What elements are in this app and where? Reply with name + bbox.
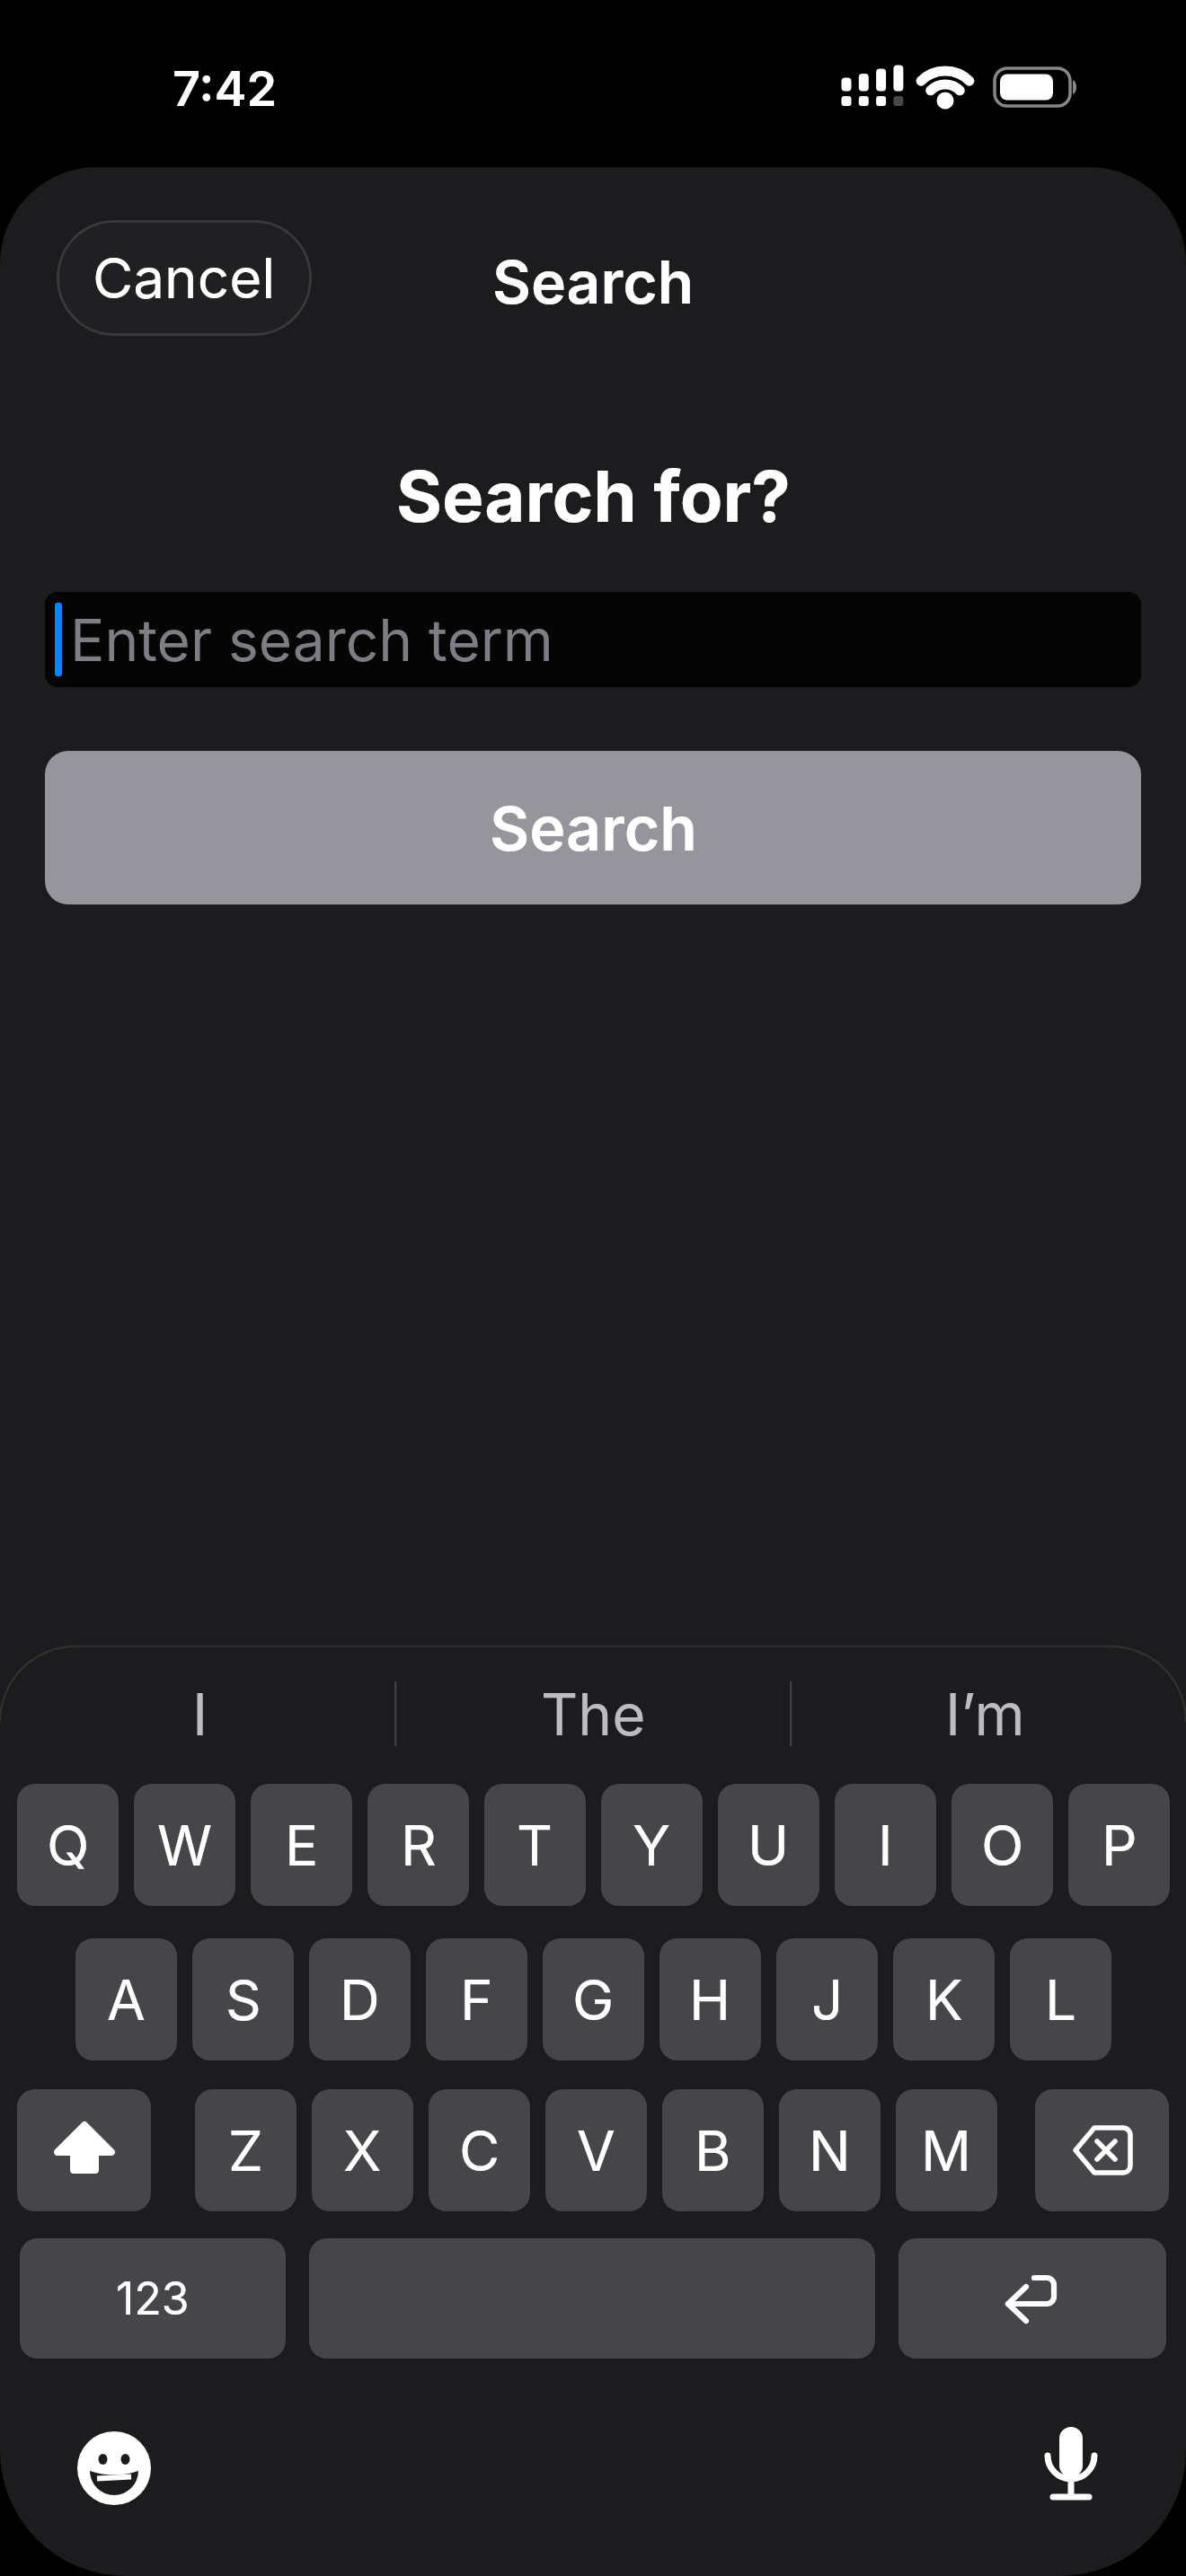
- staticText: D: [340, 1966, 380, 2033]
- staticText: Search: [490, 791, 697, 865]
- button[interactable]: A: [75, 1938, 177, 2060]
- button[interactable]: K: [893, 1938, 995, 2060]
- staticText: T: [517, 1812, 553, 1879]
- staticText: Search: [492, 246, 695, 305]
- button[interactable]: [1035, 2089, 1169, 2211]
- staticText: G: [572, 1966, 615, 2033]
- staticText: K: [925, 1966, 963, 2033]
- staticText: H: [689, 1966, 731, 2033]
- button[interactable]: P: [1068, 1784, 1170, 1906]
- button[interactable]: Enter search term: [45, 592, 1141, 687]
- staticText: The: [541, 1680, 646, 1749]
- button[interactable]: D: [309, 1938, 411, 2060]
- staticText: I: [192, 1680, 208, 1749]
- button[interactable]: Cancel: [57, 220, 312, 336]
- staticText: I’m: [945, 1680, 1025, 1749]
- staticText: 123: [116, 2272, 190, 2325]
- staticText: 7:42: [173, 59, 278, 113]
- button[interactable]: Search: [45, 751, 1141, 904]
- button[interactable]: E: [251, 1784, 352, 1906]
- button[interactable]: H: [659, 1938, 761, 2060]
- button[interactable]: I: [835, 1784, 936, 1906]
- staticText: U: [748, 1812, 790, 1879]
- staticText: E: [285, 1812, 319, 1879]
- staticText: S: [226, 1966, 261, 2033]
- button[interactable]: J: [776, 1938, 878, 2060]
- button[interactable]: L: [1010, 1938, 1111, 2060]
- staticText: P: [1102, 1812, 1137, 1879]
- staticText: R: [401, 1812, 437, 1879]
- button[interactable]: M: [896, 2089, 997, 2211]
- staticText: O: [981, 1812, 1024, 1879]
- button[interactable]: R: [367, 1784, 469, 1906]
- staticText: Z: [228, 2117, 263, 2184]
- button[interactable]: [898, 2238, 1166, 2359]
- button[interactable]: N: [779, 2089, 881, 2211]
- staticText: W: [157, 1812, 213, 1879]
- button[interactable]: Y: [601, 1784, 703, 1906]
- button[interactable]: X: [312, 2089, 413, 2211]
- button[interactable]: F: [426, 1938, 527, 2060]
- staticText: B: [695, 2117, 731, 2184]
- button[interactable]: Q: [17, 1784, 119, 1906]
- button[interactable]: I’m: [841, 1673, 1128, 1754]
- button[interactable]: [17, 2089, 151, 2211]
- button[interactable]: 123: [20, 2238, 286, 2359]
- button[interactable]: U: [718, 1784, 819, 1906]
- staticText: I: [878, 1812, 893, 1879]
- staticText: N: [809, 2117, 851, 2184]
- button[interactable]: S: [192, 1938, 294, 2060]
- staticText: V: [577, 2117, 615, 2184]
- staticText: Q: [47, 1812, 90, 1879]
- button[interactable]: V: [545, 2089, 647, 2211]
- button[interactable]: G: [543, 1938, 644, 2060]
- button[interactable]: The: [449, 1673, 737, 1754]
- button[interactable]: [1033, 2421, 1109, 2510]
- button[interactable]: [77, 2431, 151, 2505]
- button[interactable]: C: [429, 2089, 530, 2211]
- staticText: Y: [633, 1812, 671, 1879]
- button[interactable]: W: [134, 1784, 235, 1906]
- button[interactable]: O: [951, 1784, 1053, 1906]
- staticText: Search for?: [396, 454, 791, 534]
- staticText: Enter search term: [70, 605, 553, 675]
- staticText: F: [460, 1966, 493, 2033]
- staticText: C: [459, 2117, 500, 2184]
- staticText: A: [107, 1966, 146, 2033]
- staticText: J: [811, 1966, 844, 2033]
- staticText: Cancel: [93, 244, 276, 312]
- staticText: M: [921, 2117, 972, 2184]
- button[interactable]: Z: [195, 2089, 296, 2211]
- staticText: X: [343, 2117, 382, 2184]
- button[interactable]: T: [484, 1784, 586, 1906]
- button[interactable]: [309, 2238, 875, 2359]
- staticText: L: [1045, 1966, 1077, 2033]
- button[interactable]: B: [662, 2089, 764, 2211]
- button[interactable]: I: [57, 1673, 344, 1754]
